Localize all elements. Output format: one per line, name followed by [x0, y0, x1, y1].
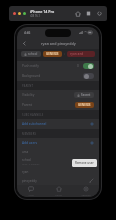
button[interactable]: Minimize: [18, 12, 21, 15]
button[interactable]: Add subchannel: [17, 119, 99, 129]
button[interactable]: Secret: [74, 92, 94, 98]
button[interactable]: Background: [17, 71, 99, 81]
staticText: Home: [55, 193, 62, 196]
staticText: ursa: [22, 150, 94, 154]
button[interactable]: GENESIS: [75, 102, 94, 108]
staticText: Settings: [81, 193, 91, 196]
button[interactable]: Toggle on: [83, 63, 94, 69]
button[interactable]: Chat: [17, 185, 45, 197]
button[interactable]: Settings: [72, 185, 99, 197]
staticText: ursa • 2 admins: [22, 162, 40, 165]
button[interactable]: Home: [45, 185, 72, 197]
button[interactable]: Zoom: [23, 12, 26, 15]
staticText: Add subchannel: [22, 122, 90, 126]
staticText: Visibility: [22, 93, 74, 97]
staticText: GENESIS: [78, 103, 91, 107]
button[interactable]: GENESIS: [43, 51, 62, 57]
button[interactable]: Remove user: [72, 159, 97, 167]
staticText: school: [28, 52, 38, 56]
staticText: school: [22, 158, 32, 162]
staticText: pinoyeddy: [22, 179, 89, 183]
button[interactable]: school: [21, 51, 41, 57]
staticText: iPhone 14 Pro: [30, 9, 55, 14]
button[interactable]: Parent: [17, 100, 99, 110]
staticText: ryan: [22, 170, 94, 174]
staticText: ryan and pinoyeddy: [70, 52, 92, 56]
button[interactable]: Home: [74, 10, 81, 17]
staticText: 4:46: [24, 31, 31, 35]
button[interactable]: school: [17, 156, 99, 167]
button[interactable]: pinoyeddy: [17, 176, 99, 185]
staticText: Secret: [81, 93, 91, 97]
button[interactable]: Push notify: [17, 61, 99, 71]
staticText: Background: [22, 74, 83, 78]
staticText: ryan and pinoyeddy: [41, 41, 76, 46]
staticText: Chat: [28, 193, 34, 196]
staticText: PARENT: [22, 84, 34, 88]
staticText: MEMBERS: [22, 132, 37, 136]
button[interactable]: Close: [13, 12, 16, 15]
button[interactable]: ryan and pinoyeddy: [67, 51, 95, 57]
button[interactable]: Back: [21, 40, 28, 47]
staticText: iOS 16.1: [30, 14, 40, 18]
staticText: 0: [77, 64, 79, 68]
staticText: Remove user: [75, 161, 94, 165]
button[interactable]: Screenshot: [85, 10, 92, 17]
button[interactable]: Rotate: [96, 10, 103, 17]
staticText: GENESIS: [46, 52, 59, 56]
staticText: SUBCHANNELS: [22, 113, 44, 117]
button[interactable]: Add users: [17, 138, 99, 148]
staticText: Add users: [22, 141, 90, 145]
staticText: Parent: [22, 103, 75, 107]
staticText: ›: [64, 52, 65, 56]
button[interactable]: Visibility: [17, 90, 99, 100]
staticText: Push notify: [22, 64, 77, 68]
button[interactable]: Toggle off: [83, 73, 94, 79]
